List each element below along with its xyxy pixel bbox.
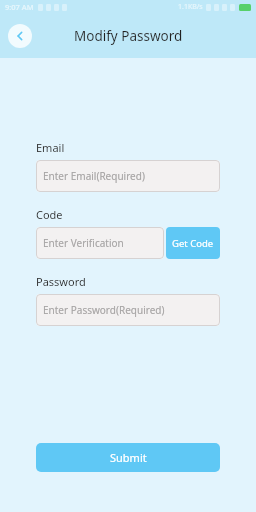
staticText: Code <box>36 207 63 222</box>
button[interactable]: Get Code <box>166 227 220 259</box>
button[interactable]: Enter Password(Required) <box>36 294 220 326</box>
staticText: Email <box>36 140 65 155</box>
staticText: Modify Password <box>74 27 183 45</box>
staticText: Enter Password(Required) <box>43 303 165 317</box>
staticText: Password <box>36 274 86 289</box>
staticText: 1.1KB/s <box>178 2 203 12</box>
button[interactable]: Enter Verification Code(Req <box>36 227 164 259</box>
staticText: Enter Email(Required) <box>43 169 145 183</box>
staticText: Enter Verification Code(Req <box>43 236 164 250</box>
staticText: Submit <box>110 450 147 465</box>
staticText: 9:07 AM <box>5 2 34 12</box>
button[interactable]: Submit <box>36 443 220 472</box>
button[interactable]: Back <box>8 24 32 48</box>
staticText: Get Code <box>172 237 214 250</box>
button[interactable]: Enter Email(Required) <box>36 160 220 192</box>
